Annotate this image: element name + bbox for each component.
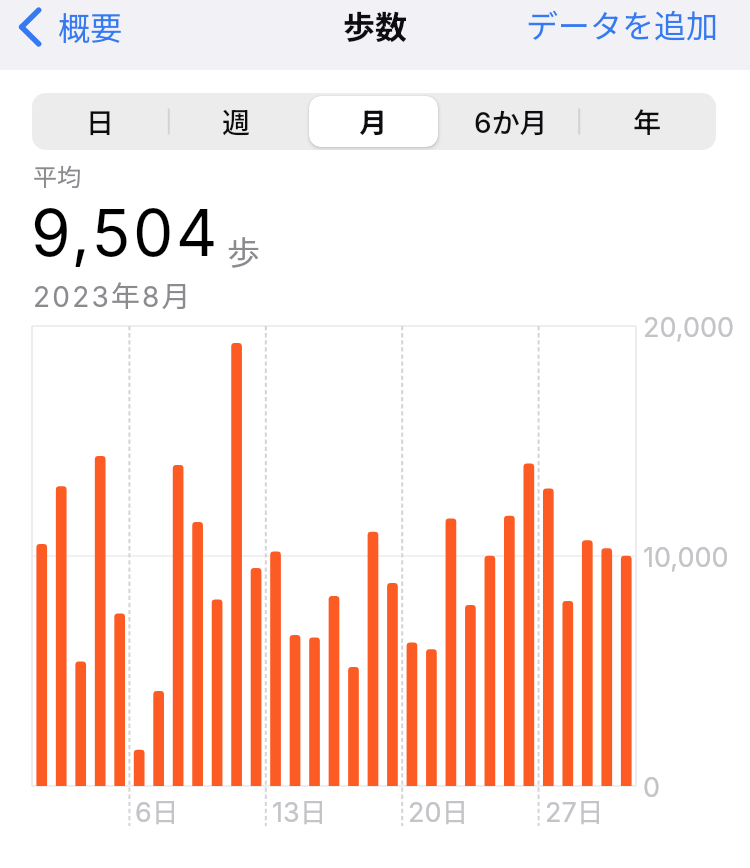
other: Back — [12, 3, 46, 51]
staticText: 10,000 — [643, 541, 729, 574]
staticText: 6日 — [135, 791, 179, 830]
button[interactable]: Back — [12, 0, 123, 48]
staticText: 月 — [359, 101, 388, 142]
staticText: 20,000 — [643, 311, 735, 344]
staticText: 平均 — [33, 158, 81, 193]
button[interactable]: 月 — [305, 93, 442, 150]
staticText: 日 — [86, 101, 115, 142]
staticText: 歩数 — [343, 2, 408, 48]
staticText: 9,504 — [31, 194, 220, 271]
staticText: 週 — [222, 101, 251, 142]
staticText: 27日 — [545, 791, 604, 830]
staticText: 13日 — [272, 791, 327, 830]
staticText: 20日 — [408, 791, 469, 830]
staticText: 年 — [633, 101, 662, 142]
staticText: 6か月 — [474, 101, 548, 142]
staticText: 概要 — [58, 3, 123, 49]
button[interactable]: 週 — [168, 93, 305, 150]
staticText: 0 — [643, 771, 661, 804]
button[interactable]: 6か月 — [442, 93, 579, 150]
button[interactable]: 日 — [32, 93, 168, 150]
button[interactable]: データを追加 — [526, 1, 719, 47]
button[interactable]: 年 — [579, 93, 716, 150]
staticText: 2023年8月 — [33, 273, 193, 315]
staticText: データを追加 — [526, 1, 719, 47]
staticText: 歩 — [227, 227, 260, 275]
